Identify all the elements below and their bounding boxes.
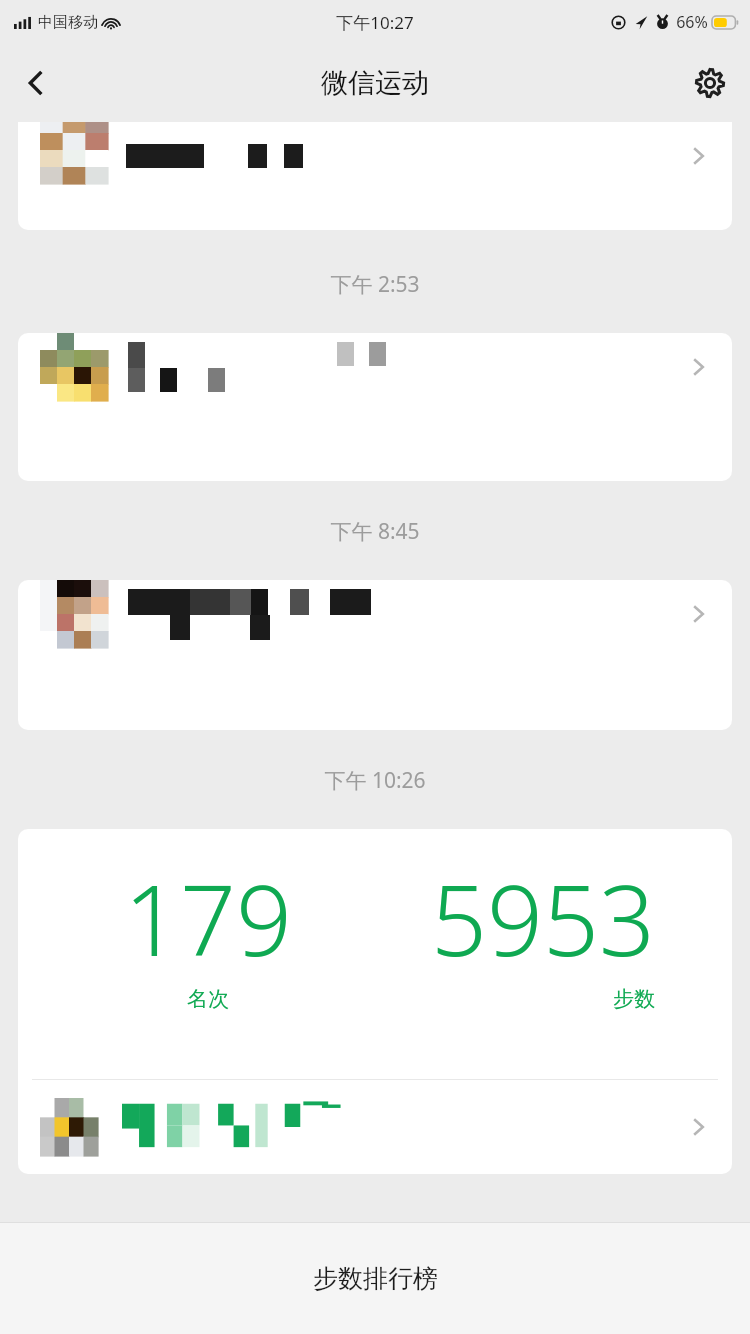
button[interactable]: Settings — [682, 55, 738, 111]
staticText: 66% — [676, 11, 708, 33]
staticText: 步数 — [613, 986, 655, 1012]
button[interactable] — [18, 122, 732, 230]
staticText: 下午10:27 — [336, 11, 414, 34]
staticText: 下午 2:53 — [330, 270, 420, 299]
button[interactable] — [18, 580, 732, 730]
staticText: 名次 — [187, 986, 229, 1012]
staticText: 下午 8:45 — [330, 517, 420, 546]
staticText: 179 — [124, 851, 292, 984]
button[interactable] — [18, 333, 732, 481]
staticText: 5953 — [431, 851, 655, 984]
staticText: 步数排行榜 — [313, 1263, 438, 1294]
staticText: 中国移动 — [38, 13, 98, 32]
staticText: 微信运动 — [321, 66, 429, 100]
button[interactable]: 步数排行榜 — [0, 1223, 750, 1334]
button[interactable]: Back — [8, 55, 64, 111]
button[interactable]: 179 — [18, 829, 732, 1174]
staticText: 下午 10:26 — [324, 766, 426, 795]
